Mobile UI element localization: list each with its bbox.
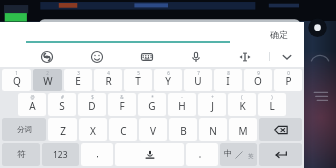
button[interactable]: C	[109, 118, 137, 141]
staticText: W	[43, 74, 53, 88]
button[interactable]: 9	[244, 69, 272, 91]
staticText: $	[91, 94, 94, 100]
button[interactable]: 确定	[264, 26, 294, 43]
button[interactable]: *	[138, 93, 166, 116]
button[interactable]: @	[18, 93, 46, 116]
staticText: J	[211, 99, 214, 113]
staticText: 5	[137, 70, 140, 76]
staticText: C	[120, 124, 127, 138]
staticText: -	[181, 94, 183, 100]
button[interactable]: Hide keyboard	[270, 46, 304, 67]
staticText: K	[239, 99, 246, 113]
button[interactable]: Enter	[259, 143, 302, 166]
staticText: P	[285, 74, 292, 88]
button[interactable]: 。	[186, 143, 218, 166]
button[interactable]: 分词	[2, 118, 46, 141]
staticText: 1	[15, 70, 18, 76]
staticText: 0	[287, 70, 290, 76]
button[interactable]: ，	[81, 143, 113, 166]
button[interactable]: 0	[274, 69, 302, 91]
button[interactable]: 符	[2, 143, 40, 166]
staticText: #	[61, 94, 64, 100]
staticText: *	[151, 94, 154, 100]
staticText: 6	[167, 70, 170, 76]
staticText: X	[90, 124, 96, 138]
staticText: 分词	[17, 125, 32, 134]
staticText: D	[88, 99, 96, 113]
button[interactable]: Move cursor	[220, 46, 269, 67]
staticText: 英	[248, 153, 254, 160]
staticText: 中	[224, 148, 232, 158]
button[interactable]: +	[198, 93, 226, 116]
button[interactable]: Voice input	[171, 46, 220, 67]
staticText: F	[119, 99, 125, 113]
staticText: ，	[93, 149, 102, 160]
button[interactable]: X	[79, 118, 107, 141]
staticText: Z	[60, 124, 66, 138]
button[interactable]: M	[229, 118, 257, 141]
staticText: 7	[197, 70, 200, 76]
button[interactable]: Backspace	[259, 118, 302, 141]
staticText: )	[271, 94, 273, 100]
button[interactable]: Sogou logo	[22, 46, 72, 67]
button[interactable]: 2	[33, 69, 62, 91]
staticText: 确定	[270, 29, 288, 40]
button[interactable]: $	[78, 93, 106, 116]
staticText: 2	[46, 70, 49, 76]
button[interactable]: Z	[48, 118, 77, 141]
button[interactable]: 123	[42, 143, 79, 166]
button[interactable]: 5	[124, 69, 152, 91]
staticText: H	[178, 99, 186, 113]
button[interactable]: Space	[115, 143, 184, 166]
staticText: @	[30, 94, 35, 100]
staticText: T	[135, 74, 141, 88]
staticText: Q	[13, 74, 21, 88]
staticText: 123	[53, 149, 68, 161]
staticText: S	[59, 99, 65, 113]
button[interactable]: #	[48, 93, 76, 116]
staticText: (	[241, 94, 243, 100]
staticText: R	[105, 74, 112, 88]
staticText: M	[238, 124, 248, 138]
button[interactable]: 7	[184, 69, 212, 91]
staticText: 。	[198, 149, 207, 160]
staticText: &	[120, 94, 124, 100]
button[interactable]: N	[199, 118, 227, 141]
staticText: U	[194, 74, 202, 88]
button[interactable]: &	[108, 93, 136, 116]
staticText: +	[211, 94, 214, 100]
staticText: A	[29, 99, 36, 113]
button[interactable]: Keyboard layout	[122, 46, 171, 67]
staticText: Y	[165, 74, 171, 88]
button[interactable]: (	[228, 93, 256, 116]
staticText: 符	[17, 149, 26, 160]
button[interactable]: 6	[154, 69, 182, 91]
button[interactable]: -	[168, 93, 196, 116]
staticText: E	[75, 74, 81, 88]
button[interactable]: 3	[64, 69, 92, 91]
button[interactable]: 4	[94, 69, 122, 91]
button[interactable]: 中	[220, 143, 257, 166]
staticText: O	[254, 74, 262, 88]
button[interactable]: 8	[214, 69, 242, 91]
staticText: I	[226, 74, 230, 88]
button[interactable]: 1	[2, 69, 31, 91]
staticText: 3	[77, 70, 80, 76]
staticText: N	[209, 124, 217, 138]
button[interactable]: )	[258, 93, 286, 116]
staticText: V	[150, 124, 156, 138]
staticText: G	[148, 99, 156, 113]
staticText: 4	[107, 70, 110, 76]
staticText: B	[180, 124, 187, 138]
button[interactable]: Emoji	[72, 46, 122, 67]
staticText: L	[269, 99, 275, 113]
button[interactable]: V	[139, 118, 167, 141]
button[interactable]: B	[169, 118, 197, 141]
staticText: 8	[227, 70, 230, 76]
staticText: 9	[257, 70, 260, 76]
